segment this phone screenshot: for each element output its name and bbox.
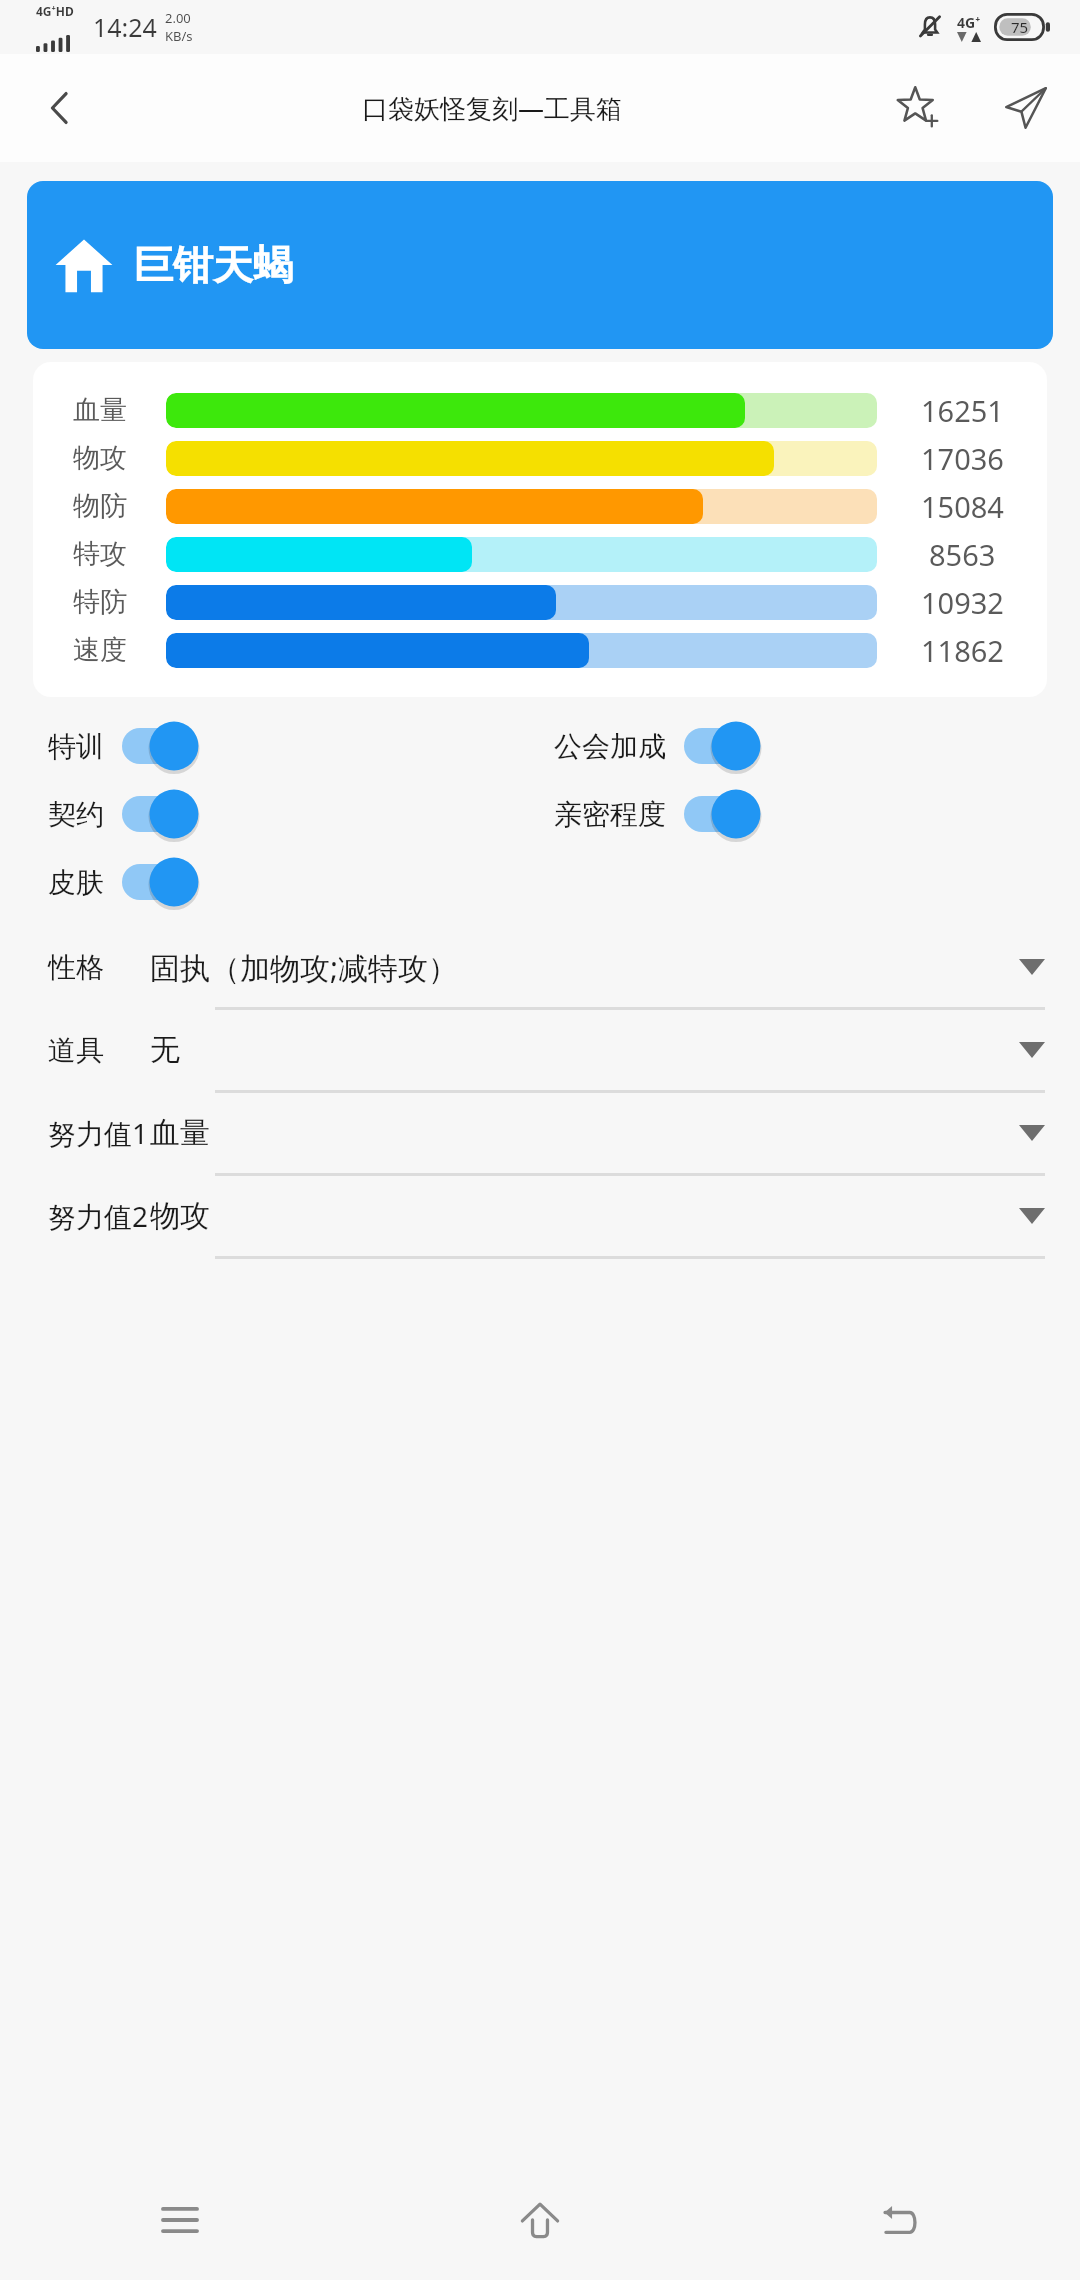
- button[interactable]: 道具: [0, 1010, 1080, 1093]
- staticText: 14:24: [93, 10, 157, 44]
- staticText: 努力值1: [48, 1114, 149, 1152]
- staticText: 血量: [73, 393, 127, 427]
- staticText: 性格: [48, 950, 104, 985]
- staticText: 4G⁺: [957, 13, 981, 32]
- staticText: 口袋妖怪复刻—工具箱: [362, 90, 623, 126]
- staticText: 10932: [921, 583, 1004, 622]
- staticText: 公会加成: [554, 729, 666, 764]
- button[interactable]: 亲密程度: [554, 787, 764, 841]
- staticText: 4G⁺HD: [36, 3, 74, 19]
- staticText: 11862: [921, 631, 1004, 670]
- staticText: 8563: [929, 535, 996, 574]
- staticText: 15084: [921, 487, 1004, 526]
- staticText: 亲密程度: [554, 797, 666, 832]
- staticText: 物防: [73, 489, 127, 523]
- staticText: KB/s: [165, 27, 193, 45]
- button[interactable]: Back: [0, 54, 120, 162]
- staticText: 16251: [921, 391, 1004, 430]
- staticText: 物攻: [150, 1197, 210, 1235]
- staticText: 特训: [48, 729, 104, 764]
- staticText: 2.00: [165, 9, 191, 27]
- staticText: 17036: [921, 439, 1004, 478]
- button[interactable]: 契约: [48, 787, 202, 841]
- staticText: 契约: [48, 797, 104, 832]
- staticText: 物攻: [73, 441, 127, 475]
- button[interactable]: Home: [360, 2160, 720, 2280]
- button[interactable]: Recent apps: [0, 2160, 360, 2280]
- button[interactable]: Back: [720, 2160, 1080, 2280]
- button[interactable]: 性格: [0, 927, 1080, 1010]
- staticText: 血量: [150, 1114, 210, 1152]
- button[interactable]: 巨钳天蝎: [27, 181, 1053, 349]
- staticText: 速度: [73, 633, 127, 667]
- button[interactable]: 皮肤: [48, 855, 202, 909]
- button[interactable]: 公会加成: [554, 719, 764, 773]
- button[interactable]: 特训: [48, 719, 202, 773]
- button[interactable]: 努力值1: [0, 1093, 1080, 1176]
- staticText: 巨钳天蝎: [133, 240, 293, 290]
- staticText: 特攻: [73, 537, 127, 571]
- button[interactable]: Share: [972, 54, 1080, 162]
- staticText: 道具: [48, 1033, 104, 1068]
- staticText: 固执（加物攻;减特攻）: [150, 947, 459, 988]
- button[interactable]: Add to favorites: [864, 54, 972, 162]
- button[interactable]: 努力值2: [0, 1176, 1080, 1259]
- staticText: 皮肤: [48, 865, 104, 900]
- staticText: 努力值2: [48, 1197, 149, 1235]
- staticText: 特防: [73, 585, 127, 619]
- staticText: 无: [150, 1031, 180, 1069]
- staticText: 75: [1011, 17, 1029, 37]
